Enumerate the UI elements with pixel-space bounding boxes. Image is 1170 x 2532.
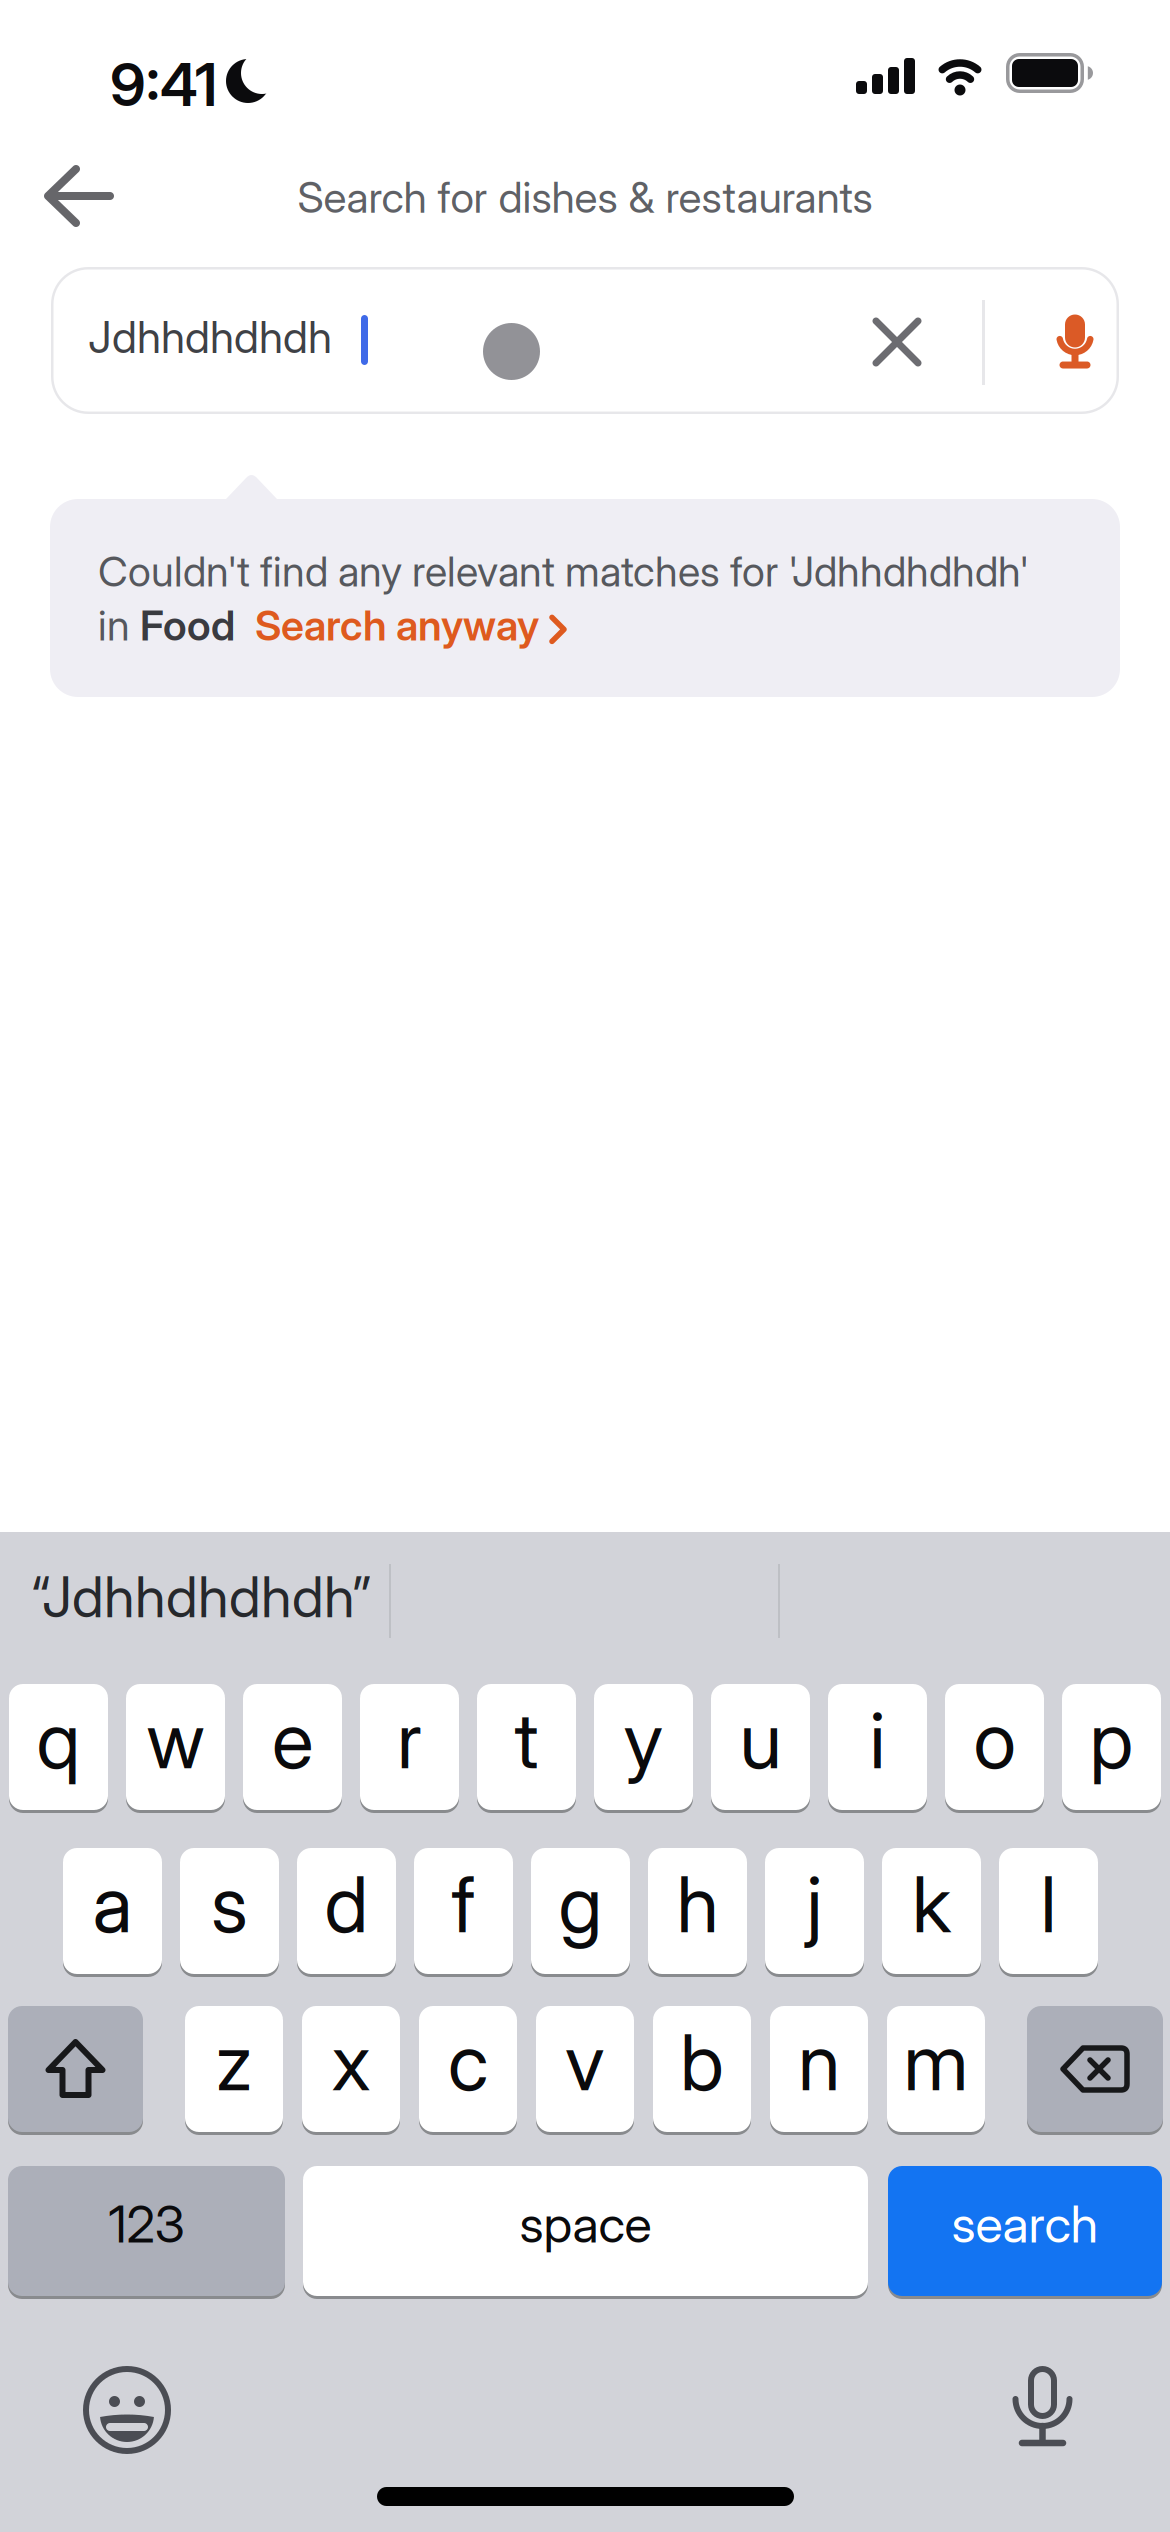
staticText: w xyxy=(146,1694,204,1786)
staticText: q xyxy=(36,1694,80,1786)
button[interactable]: w xyxy=(126,1684,225,1810)
staticText: Search for dishes & restaurants xyxy=(297,172,872,222)
button[interactable]: space xyxy=(303,2166,868,2296)
button[interactable]: Dictation xyxy=(1014,2366,1071,2447)
button[interactable]: t xyxy=(477,1684,576,1810)
button[interactable]: 123 xyxy=(8,2166,285,2296)
button[interactable]: f xyxy=(414,1848,513,1974)
button[interactable]: k xyxy=(882,1848,981,1974)
button[interactable]: p xyxy=(1062,1684,1161,1810)
button[interactable]: Search anyway xyxy=(255,601,570,650)
button[interactable]: Back xyxy=(40,160,118,232)
staticText: u xyxy=(739,1694,781,1786)
staticText: x xyxy=(331,2016,370,2108)
staticText: s xyxy=(211,1858,248,1950)
staticText: a xyxy=(92,1858,132,1950)
staticText: space xyxy=(519,2194,651,2254)
button[interactable]: h xyxy=(648,1848,747,1974)
button[interactable]: Emoji xyxy=(86,2369,168,2451)
button[interactable]: b xyxy=(653,2006,751,2132)
button[interactable]: q xyxy=(9,1684,108,1810)
staticText: 9:41 xyxy=(110,50,217,119)
button[interactable]: g xyxy=(531,1848,630,1974)
button[interactable]: m xyxy=(887,2006,985,2132)
button[interactable]: d xyxy=(297,1848,396,1974)
staticText: Food xyxy=(140,601,235,650)
button[interactable]: Shift xyxy=(8,2006,143,2132)
staticText: p xyxy=(1089,1694,1133,1786)
button[interactable]: s xyxy=(180,1848,279,1974)
staticText: search xyxy=(951,2194,1098,2254)
button[interactable]: Delete xyxy=(1027,2006,1163,2132)
button[interactable]: i xyxy=(828,1684,927,1810)
staticText: 123 xyxy=(108,2194,184,2254)
button[interactable]: y xyxy=(594,1684,693,1810)
staticText: m xyxy=(903,2016,968,2108)
staticText: “Jdhhdhdhdh” xyxy=(31,1564,371,1630)
staticText: t xyxy=(514,1694,538,1786)
staticText: c xyxy=(448,2016,488,2108)
button[interactable]: Voice search xyxy=(1031,287,1119,397)
button[interactable]: z xyxy=(185,2006,283,2132)
staticText: f xyxy=(451,1858,475,1950)
button[interactable]: l xyxy=(999,1848,1098,1974)
staticText: r xyxy=(397,1694,422,1786)
button[interactable]: c xyxy=(419,2006,517,2132)
button[interactable]: “Jdhhdhdhdh” xyxy=(11,1537,391,1657)
staticText: Jdhhdhdhdh xyxy=(88,311,332,363)
button[interactable]: n xyxy=(770,2006,868,2132)
staticText: k xyxy=(912,1858,951,1950)
button[interactable]: j xyxy=(765,1848,864,1974)
button[interactable]: a xyxy=(63,1848,162,1974)
staticText: y xyxy=(623,1694,663,1786)
staticText: j xyxy=(806,1858,822,1950)
button[interactable]: e xyxy=(243,1684,342,1810)
staticText: i xyxy=(869,1694,885,1786)
button[interactable]: Jdhhdhdhdh xyxy=(51,267,1119,414)
staticText: e xyxy=(272,1694,313,1786)
button[interactable]: x xyxy=(302,2006,400,2132)
staticText: o xyxy=(973,1694,1015,1786)
staticText: z xyxy=(215,2016,252,2108)
staticText: d xyxy=(324,1858,368,1950)
staticText: h xyxy=(676,1858,718,1950)
button[interactable]: o xyxy=(945,1684,1044,1810)
staticText: b xyxy=(680,2016,724,2108)
button[interactable]: Clear search xyxy=(852,297,942,387)
staticText: Couldn't find any relevant matches for '… xyxy=(98,547,1029,596)
staticText: v xyxy=(565,2016,605,2108)
button[interactable]: v xyxy=(536,2006,634,2132)
staticText: g xyxy=(558,1858,602,1950)
staticText: Search anyway xyxy=(255,601,539,650)
button[interactable]: search xyxy=(888,2166,1162,2296)
button[interactable]: r xyxy=(360,1684,459,1810)
button[interactable]: u xyxy=(711,1684,810,1810)
staticText: n xyxy=(798,2016,840,2108)
staticText: in xyxy=(98,601,140,650)
staticText: l xyxy=(1040,1858,1056,1950)
